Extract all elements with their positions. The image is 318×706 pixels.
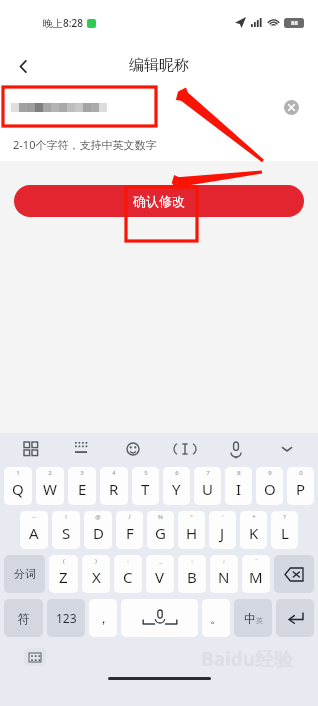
staticText: 2-10个字符，支持中英文数字 <box>13 137 157 152</box>
button[interactable]: - <box>114 555 142 593</box>
button[interactable]: * <box>240 511 267 549</box>
staticText: - <box>127 557 129 565</box>
staticText: R <box>109 479 119 499</box>
button[interactable]: @ <box>84 511 112 549</box>
button[interactable]: ; <box>210 555 238 593</box>
staticText: V <box>155 567 165 587</box>
staticText: 9 <box>268 469 272 477</box>
button[interactable]: 8 <box>225 467 252 505</box>
button[interactable]: 2 <box>36 467 64 505</box>
staticText: ` <box>255 557 257 565</box>
staticText: 8 <box>237 469 241 477</box>
staticText: 晚上8:28 <box>43 16 83 30</box>
button[interactable]: ) <box>82 555 110 593</box>
staticText: 123 <box>56 610 77 626</box>
staticText: 分词 <box>14 567 36 581</box>
staticText: ， <box>97 610 110 626</box>
staticText: B <box>187 567 197 587</box>
button[interactable]: 123 <box>47 599 85 637</box>
button[interactable]: 0 <box>287 467 314 505</box>
button[interactable]: Apps <box>18 436 44 462</box>
staticText: J <box>220 523 225 543</box>
staticText: @ <box>95 513 101 521</box>
staticText: C <box>123 567 133 587</box>
button[interactable]: Text selection <box>172 436 198 462</box>
staticText: 。 <box>210 610 223 626</box>
button[interactable]: Keyboard layout <box>69 436 95 462</box>
staticText: : <box>191 557 193 565</box>
staticText: U <box>202 479 213 499</box>
button[interactable]: Emoji <box>120 436 146 462</box>
staticText: F <box>126 523 134 543</box>
button[interactable]: Clear text <box>0 86 318 128</box>
staticText: 1 <box>16 469 20 477</box>
staticText: 2 <box>48 469 52 477</box>
staticText: ; <box>223 557 225 565</box>
staticText: ( <box>63 557 65 565</box>
button[interactable]: Clear text <box>278 94 304 120</box>
button[interactable]: 符 <box>4 599 43 637</box>
staticText: 英 <box>256 616 263 625</box>
button[interactable]: _ <box>146 555 174 593</box>
button[interactable]: Space <box>121 599 198 637</box>
staticText: 5 <box>144 469 148 477</box>
button[interactable]: 确认修改 <box>14 185 304 217</box>
button[interactable]: ~ <box>20 511 48 549</box>
staticText: " <box>190 513 193 521</box>
staticText: % <box>158 513 163 521</box>
staticText: 88 <box>291 19 298 27</box>
staticText: E <box>78 479 87 499</box>
staticText: N <box>218 567 230 587</box>
staticText: H <box>186 523 198 543</box>
button[interactable]: / <box>116 511 143 549</box>
button[interactable]: : <box>178 555 206 593</box>
staticText: I <box>236 479 242 499</box>
staticText: K <box>249 523 259 543</box>
staticText: M <box>249 567 263 587</box>
staticText: X <box>92 567 101 587</box>
staticText: W <box>43 479 57 499</box>
staticText: D <box>93 523 104 543</box>
button[interactable]: Enter <box>276 599 314 637</box>
staticText: Baidu经验 <box>201 646 294 672</box>
staticText: / <box>128 513 131 521</box>
staticText: 中 <box>244 611 256 626</box>
button[interactable]: " <box>178 511 205 549</box>
button[interactable]: Switch keyboard <box>24 648 46 666</box>
staticText: 0 <box>299 469 303 477</box>
button[interactable]: 中 <box>234 599 272 637</box>
button[interactable]: 4 <box>100 467 128 505</box>
button[interactable]: Hide keyboard <box>274 436 300 462</box>
staticText: L <box>281 523 289 543</box>
button[interactable]: 分词 <box>4 555 45 593</box>
staticText: ) <box>95 557 97 565</box>
staticText: P <box>296 479 306 499</box>
staticText: 4 <box>112 469 116 477</box>
staticText: Q <box>12 479 24 499</box>
button[interactable]: 5 <box>132 467 159 505</box>
button[interactable]: 1 <box>4 467 32 505</box>
staticText: 确认修改 <box>133 193 185 209</box>
staticText: 符 <box>18 611 30 626</box>
button[interactable]: 7 <box>194 467 221 505</box>
button[interactable]: ' <box>209 511 236 549</box>
staticText: ? <box>283 513 286 521</box>
button[interactable]: Back <box>6 49 40 83</box>
button[interactable]: ? <box>271 511 298 549</box>
button[interactable]: Backspace <box>274 555 314 593</box>
staticText: 6 <box>175 469 179 477</box>
button[interactable]: ! <box>52 511 80 549</box>
button[interactable]: 9 <box>256 467 283 505</box>
button[interactable]: Voice input <box>223 436 249 462</box>
button[interactable]: 3 <box>68 467 96 505</box>
staticText: ' <box>222 513 224 521</box>
button[interactable]: 6 <box>163 467 190 505</box>
button[interactable]: 。 <box>202 599 230 637</box>
button[interactable]: ( <box>49 555 78 593</box>
button[interactable]: % <box>147 511 174 549</box>
staticText: 7 <box>206 469 210 477</box>
staticText: O <box>264 479 276 499</box>
button[interactable]: ` <box>242 555 270 593</box>
button[interactable]: ， <box>89 599 117 637</box>
staticText: * <box>252 513 256 521</box>
